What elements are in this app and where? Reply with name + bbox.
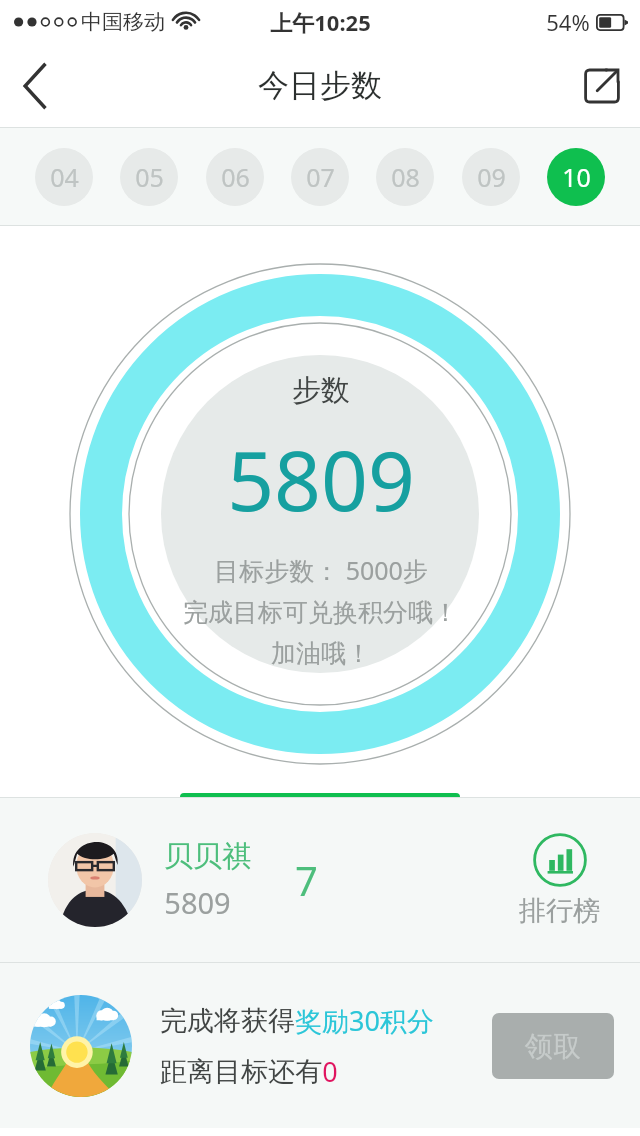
staticText: 排行榜 [519,894,600,928]
staticText: 06 [221,160,250,194]
button[interactable]: 贝贝祺 [0,798,640,962]
button[interactable]: 06 [206,148,264,206]
button[interactable]: 领取 [492,1013,614,1079]
staticText: 距离目标还有 [160,1055,322,1089]
button[interactable]: 05 [120,148,178,206]
staticText: 中国移动 [81,9,165,35]
staticText: 7 [295,853,318,907]
staticText: 步数 [292,372,350,409]
staticText: 54% [546,7,590,37]
button[interactable]: 07 [291,148,349,206]
staticText: 0 [322,1053,338,1090]
button[interactable]: 09 [462,148,520,206]
button[interactable]: 排行榜 [515,829,604,932]
staticText: 上午10:25 [270,7,371,37]
staticText: 贝贝祺 [164,838,251,875]
button[interactable]: 04 [35,148,93,206]
staticText: 10 [562,160,591,194]
staticText: 完成目标可兑换积分哦！ [183,597,458,628]
staticText: 5809 [227,423,415,535]
button[interactable]: Share [564,48,640,124]
button[interactable]: Back [0,50,72,122]
staticText: 今日步数 [258,66,382,105]
staticText: 完成将获得 [160,1004,295,1038]
staticText: 09 [477,160,506,194]
staticText: 领取 [525,1029,581,1064]
staticText: 04 [50,160,79,194]
staticText: 目标步数： 5000步 [214,553,428,587]
staticText: 奖励30积分 [295,1002,434,1039]
staticText: 05 [135,160,164,194]
staticText: 5809 [164,883,231,922]
staticText: 加油哦！ [271,638,371,669]
staticText: 07 [306,160,335,194]
button[interactable]: 10 [547,148,605,206]
button[interactable]: 08 [376,148,434,206]
staticText: 08 [391,160,420,194]
